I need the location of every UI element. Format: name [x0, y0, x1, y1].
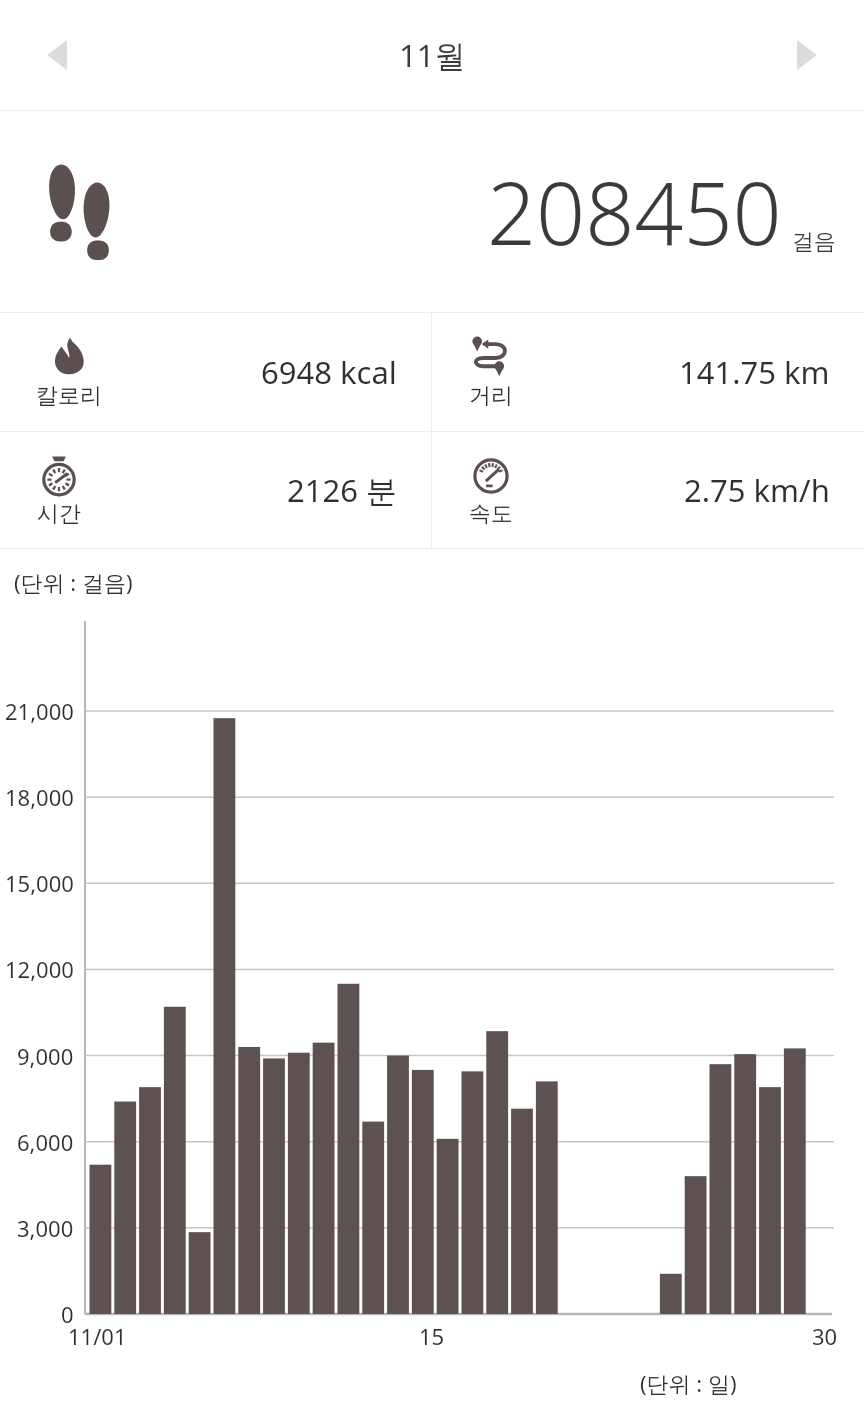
staticText: 3,000: [17, 1213, 74, 1243]
button[interactable]: 시간: [0, 432, 431, 548]
button[interactable]: Next month: [772, 20, 842, 90]
staticText: 거리: [469, 382, 513, 410]
staticText: 18,000: [5, 782, 74, 812]
staticText: 21,000: [5, 696, 74, 726]
staticText: 15: [419, 1321, 445, 1351]
staticText: 0: [61, 1299, 74, 1329]
button[interactable]: 속도: [432, 432, 864, 548]
staticText: 15,000: [5, 868, 74, 898]
button[interactable]: 칼로리: [0, 313, 431, 431]
staticText: 11월: [399, 34, 466, 76]
staticText: (단위 : 걸음): [14, 567, 133, 597]
staticText: 9,000: [17, 1041, 74, 1071]
staticText: 12,000: [5, 954, 74, 984]
staticText: (단위 : 일): [640, 1368, 737, 1398]
staticText: 11/01: [68, 1321, 127, 1351]
button[interactable]: 거리: [432, 313, 864, 431]
button[interactable]: 208450: [0, 111, 864, 312]
staticText: 6,000: [17, 1127, 74, 1157]
staticText: 208450: [487, 153, 782, 270]
staticText: 시간: [37, 500, 81, 528]
staticText: 30: [812, 1321, 838, 1351]
staticText: 141.75 km: [679, 351, 830, 393]
staticText: 2126 분: [287, 469, 397, 511]
staticText: 2.75 km/h: [684, 469, 830, 511]
staticText: 6948 kcal: [261, 351, 397, 393]
staticText: 속도: [469, 500, 513, 528]
button[interactable]: Previous month: [22, 20, 92, 90]
staticText: 칼로리: [36, 382, 102, 410]
staticText: 걸음: [792, 228, 836, 256]
